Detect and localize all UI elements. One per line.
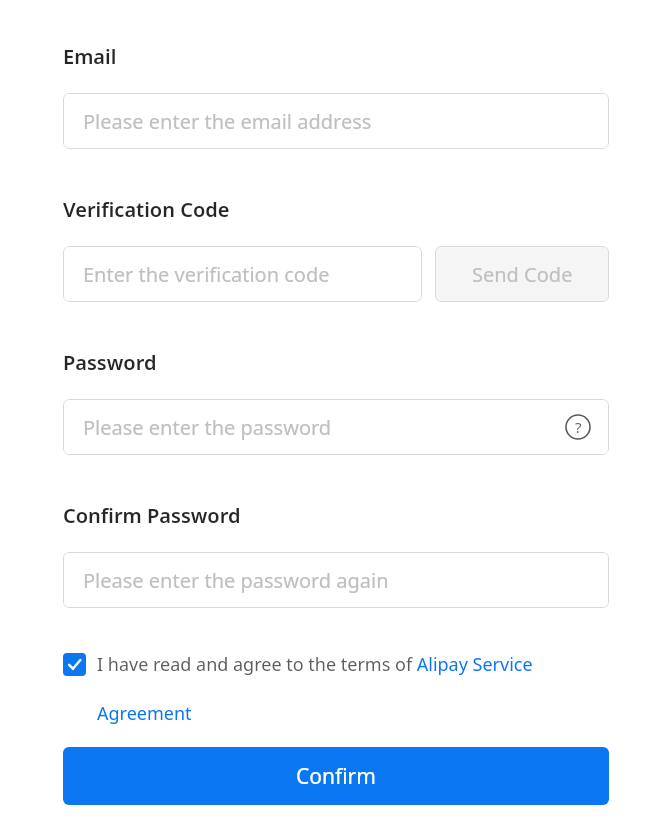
staticText: Email: [63, 43, 117, 70]
staticText: Verification Code: [63, 196, 230, 223]
staticText: Confirm: [296, 762, 376, 791]
button[interactable]: Confirm: [63, 747, 609, 805]
staticText: Password: [63, 349, 157, 376]
staticText: Confirm Password: [63, 502, 241, 529]
button[interactable]: Password help: [563, 412, 593, 442]
button[interactable]: Please enter the password again: [63, 552, 609, 608]
staticText: I have read and agree to the terms of Al…: [97, 652, 609, 725]
button[interactable]: Send Code: [435, 246, 609, 302]
staticText: Please enter the password: [83, 414, 332, 441]
staticText: Please enter the email address: [83, 108, 372, 135]
button[interactable]: Enter the verification code: [63, 246, 422, 302]
button[interactable]: Agree to terms: [63, 653, 86, 676]
button[interactable]: Please enter the email address: [63, 93, 609, 149]
staticText: Enter the verification code: [83, 261, 330, 288]
staticText: ?: [575, 417, 582, 437]
staticText: Please enter the password again: [83, 567, 389, 594]
staticText: Send Code: [472, 261, 573, 288]
button[interactable]: I have read and agree to the terms of Al…: [97, 652, 609, 725]
button[interactable]: Please enter the password: [63, 399, 609, 455]
